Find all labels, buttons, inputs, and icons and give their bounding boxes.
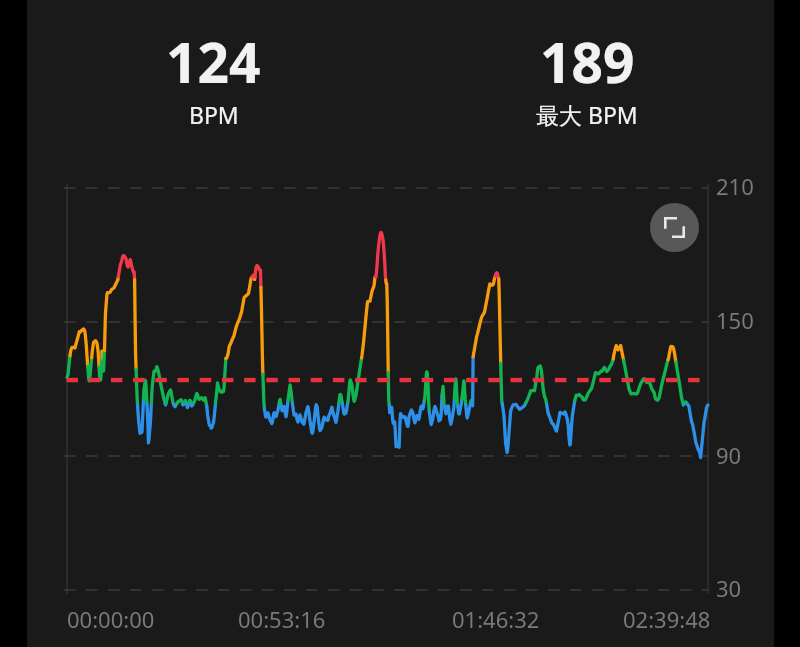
staticText: 210 <box>716 171 754 201</box>
staticText: 124 <box>166 24 261 99</box>
staticText: 00:53:16 <box>238 604 326 634</box>
staticText: 150 <box>716 305 754 335</box>
staticText: 00:00:00 <box>67 604 155 634</box>
button[interactable]: Expand chart <box>650 203 699 252</box>
staticText: 30 <box>716 573 742 603</box>
staticText: 90 <box>716 440 742 470</box>
staticText: 189 <box>540 24 635 99</box>
staticText: 02:39:48 <box>623 604 711 634</box>
staticText: 01:46:32 <box>452 604 540 634</box>
staticText: BPM <box>189 99 239 129</box>
staticText: 最大 BPM <box>536 99 638 129</box>
